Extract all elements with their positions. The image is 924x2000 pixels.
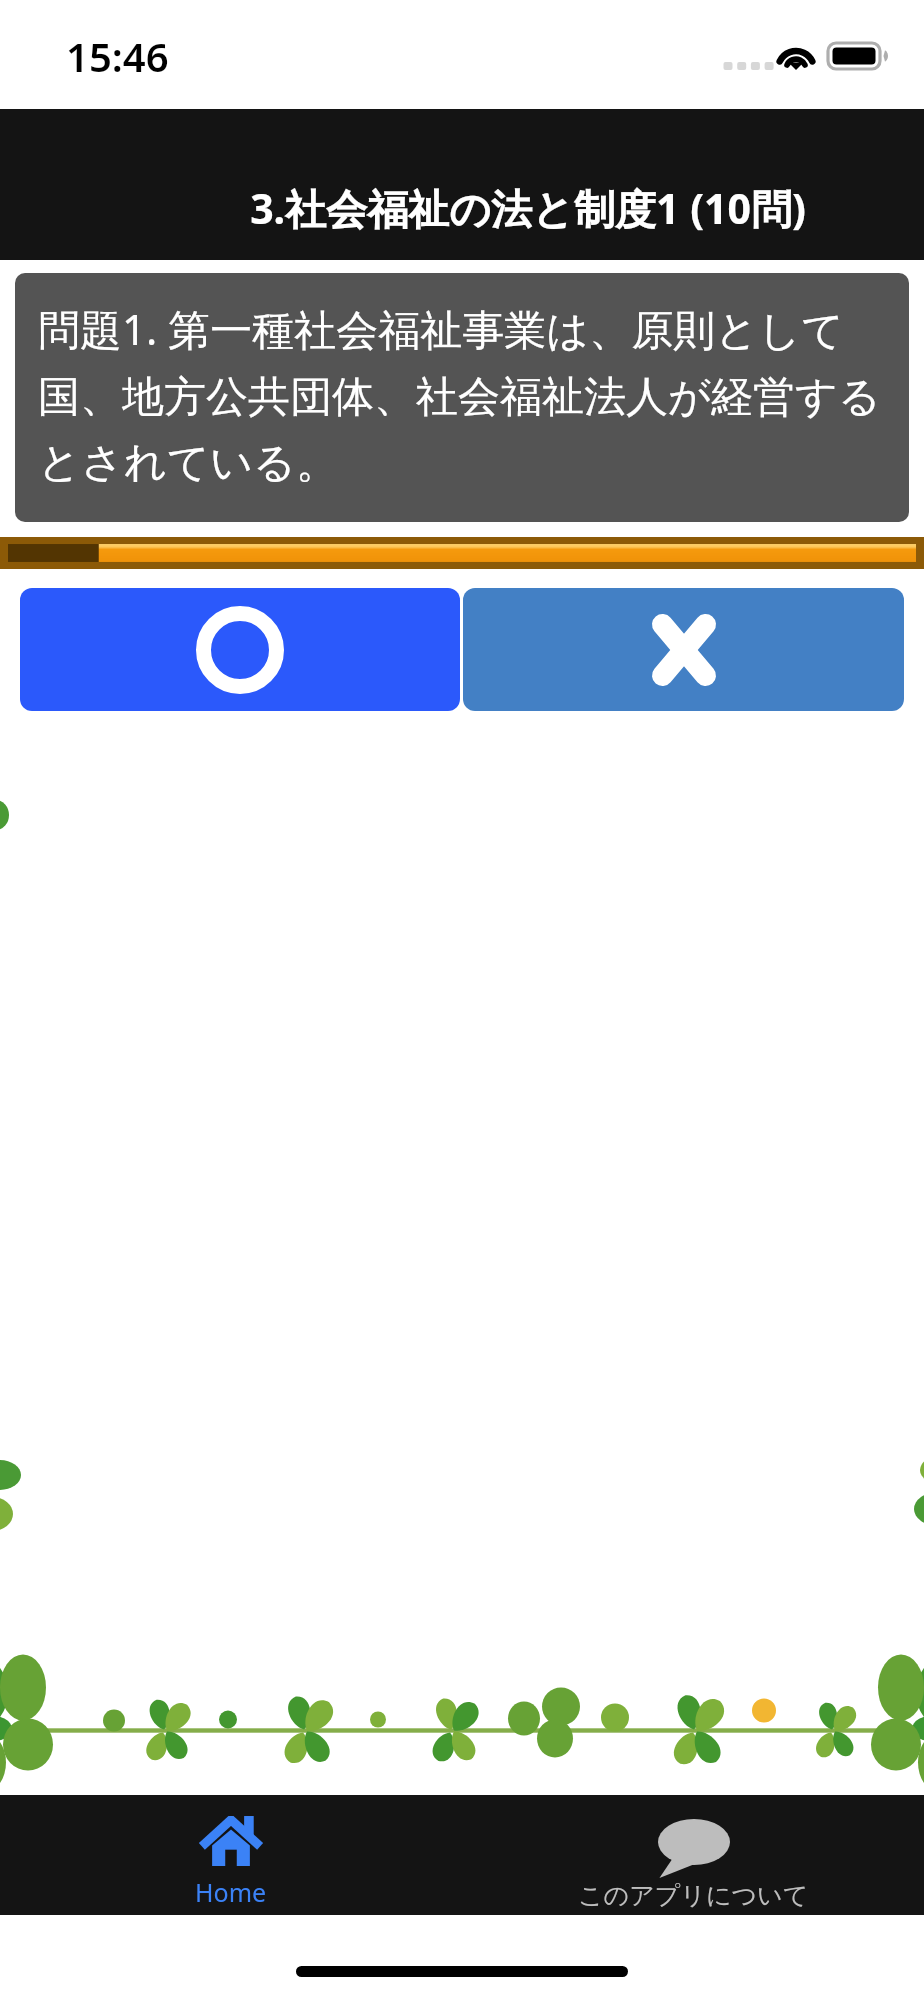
staticText: 15:46 <box>66 29 169 83</box>
staticText: 3.社会福祉の法と制度1 (10問) <box>250 180 806 236</box>
button[interactable]: まる <box>20 588 460 711</box>
staticText: Home <box>195 1875 267 1909</box>
button[interactable]: ばつ <box>463 588 904 711</box>
button[interactable]: Home <box>0 1795 462 1915</box>
button[interactable]: このアプリについて <box>462 1795 924 1915</box>
staticText: 問題1. 第一種社会福祉事業は、原則として国、地方公共団体、社会福祉法人が経営す… <box>38 300 895 490</box>
staticText: このアプリについて <box>578 1880 809 1911</box>
